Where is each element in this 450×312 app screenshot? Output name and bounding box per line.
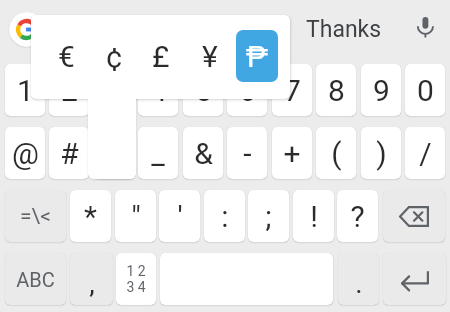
button[interactable]: 1 [5, 64, 45, 116]
staticText: 5 [195, 73, 212, 108]
button[interactable]: ¥ [186, 30, 233, 82]
staticText: Thanks [306, 16, 382, 43]
button[interactable]: 1 2 3 4 [116, 253, 156, 305]
button[interactable]: 6 [227, 64, 267, 116]
button[interactable]: . [338, 253, 379, 305]
button[interactable]: Voice input [407, 8, 444, 46]
button[interactable]: @ [5, 127, 45, 179]
staticText: : [221, 199, 229, 234]
staticText: . [355, 267, 363, 300]
button[interactable]: + [272, 127, 312, 179]
button[interactable]: 7 [272, 64, 312, 116]
button[interactable]: ! [293, 190, 334, 242]
staticText: # [60, 136, 79, 171]
button[interactable]: # [49, 127, 89, 179]
staticText: ₱ [246, 39, 268, 74]
staticText: ) [376, 136, 387, 171]
button[interactable]: & [183, 127, 223, 179]
button[interactable]: ₱ [236, 30, 278, 82]
button[interactable]: 2 [49, 64, 89, 116]
button[interactable]: ABC [5, 253, 66, 305]
staticText: 8 [328, 73, 345, 108]
button[interactable]: 5 [183, 64, 223, 116]
button[interactable]: =\< [5, 190, 66, 242]
button[interactable]: ¢ [91, 30, 138, 82]
staticText: 9 [373, 73, 390, 108]
staticText: ¥ [202, 39, 218, 74]
staticText: 0 [417, 73, 434, 108]
button[interactable]: ' [159, 190, 200, 242]
button[interactable]: Backspace [383, 190, 445, 242]
button[interactable]: 9 [361, 64, 401, 116]
button[interactable]: 4 [138, 64, 178, 116]
button[interactable]: / [405, 127, 445, 179]
staticText: 1 2 3 4 [126, 263, 146, 295]
staticText: ! [310, 199, 318, 234]
staticText: £ [152, 39, 170, 74]
button[interactable]: £ [137, 30, 184, 82]
button[interactable]: € [43, 30, 90, 82]
staticText: 6 [239, 73, 256, 108]
staticText: ¢ [106, 39, 123, 74]
button[interactable]: " [115, 190, 156, 242]
staticText: =\< [20, 204, 51, 229]
staticText: - [243, 136, 252, 171]
staticText: + [283, 136, 301, 171]
staticText: , [89, 267, 95, 300]
button[interactable]: 0 [405, 64, 445, 116]
button[interactable]: _ [138, 127, 178, 179]
button[interactable]: - [227, 127, 267, 179]
button[interactable]: ; [248, 190, 289, 242]
staticText: ABC [16, 268, 55, 291]
button[interactable]: , [70, 253, 113, 305]
button[interactable]: ? [337, 190, 378, 242]
staticText: ? [350, 199, 365, 234]
staticText: ' [177, 199, 183, 234]
staticText: ( [331, 136, 342, 171]
staticText: 2 [61, 73, 78, 108]
staticText: _ [151, 136, 165, 171]
staticText: @ [12, 136, 39, 171]
staticText: & [194, 136, 213, 171]
button[interactable]: ) [361, 127, 401, 179]
staticText: ; [265, 199, 272, 234]
staticText: / [419, 136, 432, 171]
button[interactable]: : [204, 190, 245, 242]
button[interactable]: 3 [94, 64, 134, 116]
button[interactable]: Enter [383, 253, 446, 305]
staticText: " [131, 199, 141, 234]
staticText: € [58, 39, 75, 74]
button[interactable]: 8 [316, 64, 356, 116]
button[interactable]: ( [316, 127, 356, 179]
staticText: 7 [284, 73, 301, 108]
button[interactable]: * [70, 190, 111, 242]
button[interactable]: Google [9, 12, 44, 47]
button[interactable]: Thanks [290, 7, 398, 52]
staticText: * [84, 199, 97, 234]
staticText: 4 [150, 73, 167, 108]
staticText: 1 [17, 73, 34, 108]
